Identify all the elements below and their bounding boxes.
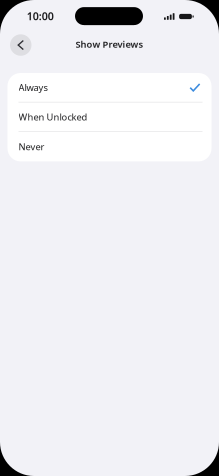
button[interactable]: Back xyxy=(10,34,31,56)
button[interactable]: When Unlocked xyxy=(7,102,211,132)
staticText: When Unlocked xyxy=(18,111,87,123)
staticText: Always xyxy=(18,81,47,94)
staticText: 10:00 xyxy=(27,9,54,23)
button[interactable]: Never xyxy=(7,132,211,161)
staticText: Show Previews xyxy=(75,38,143,50)
button[interactable]: Always xyxy=(7,73,211,102)
staticText: Never xyxy=(18,140,44,153)
